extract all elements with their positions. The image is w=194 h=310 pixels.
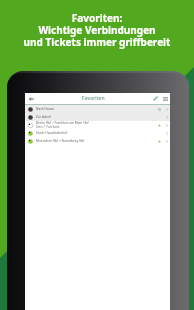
button[interactable]: Favorit xyxy=(156,137,163,145)
button[interactable]: Optionen xyxy=(163,105,170,113)
button[interactable]: Favorit xyxy=(156,105,163,113)
button[interactable]: Optionen xyxy=(163,113,170,121)
staticText: Nach Hause xyxy=(36,107,54,111)
button[interactable]: Menue xyxy=(160,93,170,104)
staticText: Muenchen Hbf > Nuernberg Hbf xyxy=(36,139,85,143)
button[interactable]: Nach Hause xyxy=(25,105,170,113)
button[interactable]: Koeln Hauptbahnhof xyxy=(25,129,170,137)
staticText: Gleis 7, Fahrkarte xyxy=(36,125,60,129)
button[interactable]: Muenchen Hbf > Nuernberg Hbf xyxy=(25,137,170,145)
button[interactable]: Bearbeiten xyxy=(150,93,160,104)
button[interactable]: Zur Arbeit xyxy=(25,113,170,121)
button[interactable]: Favorit xyxy=(156,121,163,129)
button[interactable]: Optionen xyxy=(163,129,170,137)
button[interactable]: Zurueck xyxy=(25,93,37,104)
staticText: Favoriten xyxy=(82,95,105,102)
button[interactable]: Optionen xyxy=(163,121,170,129)
button[interactable]: Berlin Hbf > Frankfurt am Main Hbf xyxy=(25,121,170,129)
staticText: Favoriten: Wichtige Verbindungen und Tic… xyxy=(0,11,194,49)
button[interactable]: Optionen xyxy=(163,137,170,145)
staticText: Koeln Hauptbahnhof xyxy=(36,131,68,135)
staticText: Zur Arbeit xyxy=(36,115,52,119)
staticText: Berlin Hbf > Frankfurt am Main Hbf xyxy=(36,121,89,125)
